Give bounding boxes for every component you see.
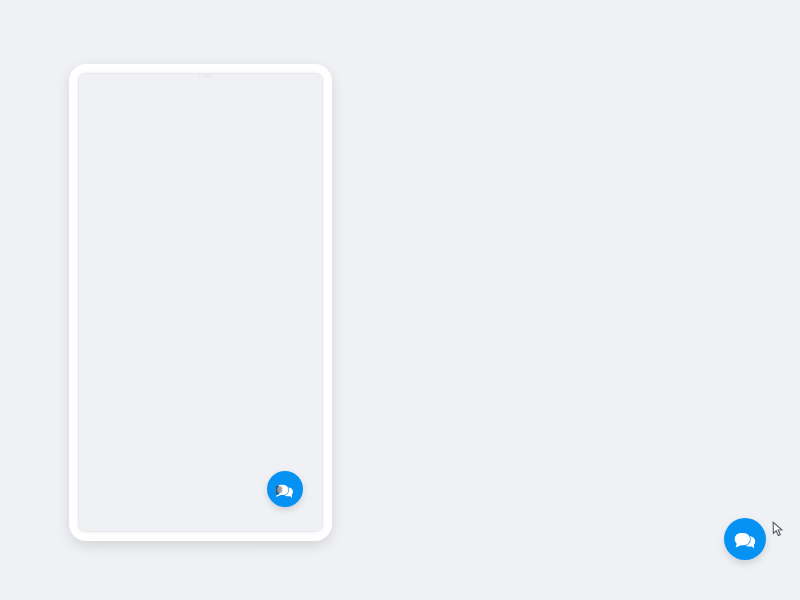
button[interactable]: New chat [267, 471, 303, 507]
button[interactable]: New chat [724, 518, 766, 560]
